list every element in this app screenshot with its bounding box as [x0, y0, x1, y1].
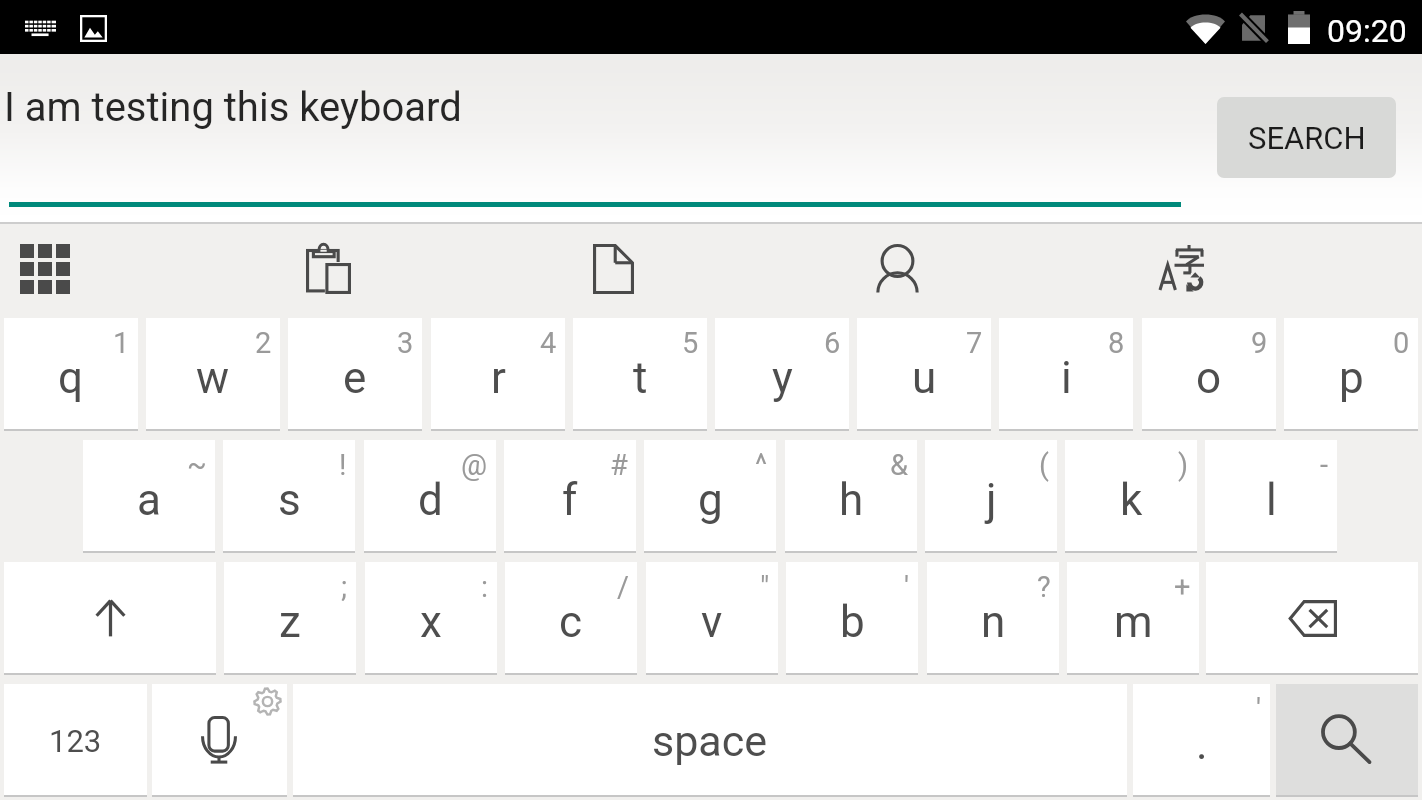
button[interactable]: w [146, 318, 280, 431]
staticText: w [196, 352, 230, 404]
staticText: a [137, 474, 161, 526]
staticText: # [610, 448, 628, 482]
button[interactable]: m [1067, 562, 1199, 675]
button[interactable]: l [1205, 440, 1337, 553]
button[interactable]: q [4, 318, 138, 431]
button[interactable]: p [1284, 318, 1418, 431]
staticText: 1 [113, 326, 130, 360]
staticText: e [343, 352, 367, 404]
button[interactable]: i [999, 318, 1133, 431]
staticText: space [652, 716, 768, 766]
button[interactable]: Text editing [566, 224, 660, 318]
staticText: ' [904, 570, 910, 604]
button[interactable]: Search [1276, 684, 1418, 797]
button[interactable]: h [785, 440, 917, 553]
staticText: b [840, 596, 865, 648]
button[interactable]: e [288, 318, 422, 431]
staticText: & [890, 448, 909, 482]
staticText: s [278, 474, 301, 526]
staticText: r [491, 352, 506, 404]
staticText: 09:20 [1327, 12, 1407, 50]
staticText: c [559, 596, 583, 648]
button[interactable]: s [223, 440, 355, 553]
staticText: t [633, 352, 648, 404]
staticText: h [839, 474, 864, 526]
button[interactable]: z [224, 562, 356, 675]
button[interactable]: k [1065, 440, 1197, 553]
staticText: x [420, 596, 442, 648]
button[interactable]: f [504, 440, 636, 553]
staticText: + [1174, 570, 1191, 604]
button[interactable]: g [644, 440, 776, 553]
staticText: u [912, 352, 937, 404]
staticText: 9 [1251, 326, 1268, 360]
staticText: i [1061, 352, 1072, 404]
staticText: SEARCH [1248, 120, 1366, 156]
button[interactable]: t [573, 318, 707, 431]
staticText: " [760, 570, 770, 604]
staticText: v [701, 596, 723, 648]
button[interactable]: space [293, 684, 1127, 797]
staticText: 123 [49, 723, 102, 759]
staticText: q [58, 352, 84, 404]
button[interactable]: b [786, 562, 918, 675]
button[interactable]: x [365, 562, 497, 675]
button[interactable]: Shift [4, 562, 216, 675]
staticText: 2 [255, 326, 272, 360]
button[interactable]: Profile [850, 224, 944, 318]
staticText: p [1339, 352, 1364, 404]
button[interactable]: SEARCH [1217, 97, 1396, 178]
staticText: k [1120, 474, 1143, 526]
staticText: ! [339, 448, 347, 482]
staticText: d [418, 474, 443, 526]
button[interactable]: Translate [1135, 224, 1229, 318]
staticText: n [981, 596, 1006, 648]
staticText: 6 [824, 326, 841, 360]
staticText: - [1320, 448, 1329, 482]
button[interactable]: u [857, 318, 991, 431]
button[interactable]: Voice input [152, 684, 287, 797]
staticText: ) [1178, 448, 1189, 482]
button[interactable]: n [927, 562, 1059, 675]
staticText: ~ [187, 448, 207, 482]
staticText: ( [1039, 448, 1049, 482]
button[interactable]: a [83, 440, 215, 553]
staticText: 4 [540, 326, 557, 360]
staticText: l [1266, 474, 1277, 526]
staticText: z [279, 596, 301, 648]
button[interactable]: c [505, 562, 637, 675]
staticText: 5 [682, 326, 699, 360]
staticText: m [1114, 596, 1153, 648]
staticText: j [986, 474, 997, 526]
button[interactable]: d [364, 440, 496, 553]
staticText: : [481, 570, 489, 604]
button[interactable]: Emoji and stickers [0, 224, 92, 318]
staticText: @ [461, 448, 488, 482]
staticText: 8 [1108, 326, 1125, 360]
button[interactable]: y [715, 318, 849, 431]
button[interactable]: v [646, 562, 778, 675]
staticText: ' [1256, 692, 1262, 726]
staticText: ; [341, 570, 348, 604]
staticText: 0 [1393, 326, 1410, 360]
staticText: y [772, 352, 793, 404]
staticText: o [1196, 352, 1222, 404]
staticText: 3 [397, 326, 414, 360]
button[interactable]: o [1142, 318, 1276, 431]
staticText: . [1196, 718, 1208, 770]
staticText: I am testing this keyboard [4, 84, 462, 131]
button[interactable]: Backspace [1206, 562, 1418, 675]
staticText: f [562, 474, 578, 526]
staticText: g [698, 474, 723, 526]
button[interactable]: Clipboard [281, 224, 375, 318]
staticText: 7 [966, 326, 983, 360]
staticText: / [617, 570, 629, 604]
staticText: ^ [755, 448, 768, 482]
button[interactable]: 123 [4, 684, 147, 797]
button[interactable]: . [1133, 684, 1270, 797]
staticText: ? [1037, 570, 1051, 604]
button[interactable]: r [431, 318, 565, 431]
button[interactable]: j [925, 440, 1057, 553]
